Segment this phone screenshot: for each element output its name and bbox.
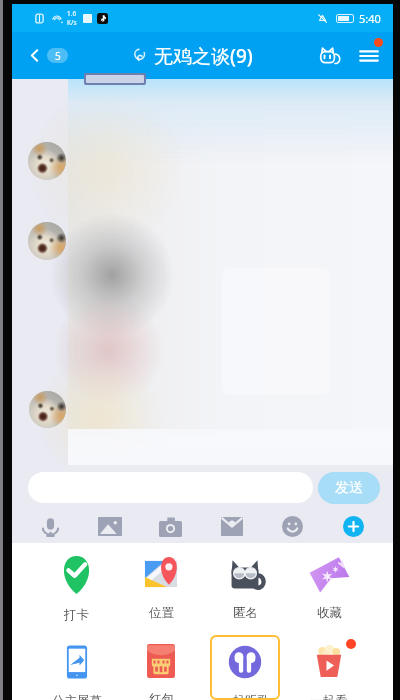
button[interactable]: Back [22, 43, 73, 68]
button[interactable]: Camera [140, 510, 201, 543]
button[interactable]: 一起听歌 [210, 635, 280, 700]
staticText: 一起听歌 [220, 693, 270, 700]
staticText: 打卡 [64, 607, 89, 623]
button[interactable]: Mail [201, 510, 262, 543]
button[interactable]: 匿名 [210, 543, 280, 631]
button[interactable]: Photo [80, 510, 140, 543]
staticText: 公主屏幕 [52, 693, 102, 700]
staticText: 一起看 [310, 693, 348, 700]
button[interactable]: 收藏 [294, 543, 364, 631]
staticText: K/s [67, 18, 77, 27]
button[interactable]: Emoji [262, 510, 323, 543]
button[interactable]: Menu [353, 40, 385, 72]
button[interactable]: 一起看 [294, 631, 364, 700]
staticText: 1.6 [67, 9, 77, 18]
button[interactable]: 红包 [126, 631, 196, 700]
staticText: 收藏 [317, 605, 342, 621]
button[interactable]: 发送 [318, 472, 380, 504]
button[interactable]: More [323, 510, 384, 543]
staticText: 匿名 [233, 605, 258, 621]
button[interactable]: Voice message [20, 510, 80, 543]
staticText: 无鸡之谈(9) [154, 43, 253, 69]
staticText: 红包 [149, 691, 174, 700]
button[interactable] [28, 472, 313, 503]
staticText: 5:40 [359, 11, 381, 26]
button[interactable]: Cat [313, 39, 347, 73]
button[interactable]: 位置 [126, 543, 196, 631]
staticText: 发送 [335, 479, 363, 497]
button[interactable]: 打卡 [41, 543, 112, 631]
staticText: 位置 [149, 605, 174, 621]
button[interactable]: 公主屏幕 [41, 631, 112, 700]
staticText: 5 [55, 49, 61, 63]
